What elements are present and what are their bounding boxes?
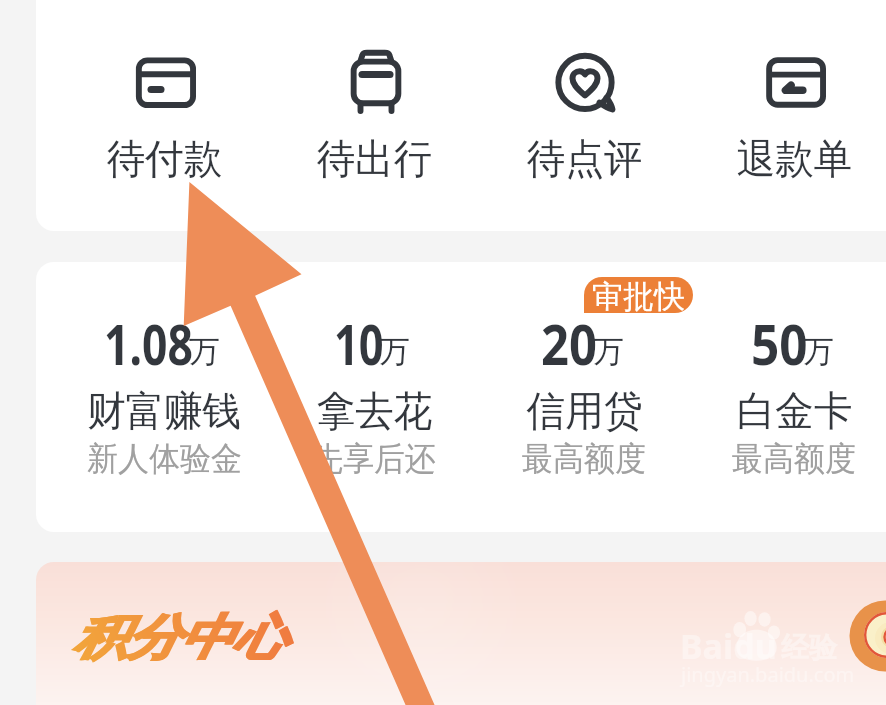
other: 待点评	[549, 47, 621, 117]
staticText: 20	[541, 306, 597, 366]
staticText: 财富赚钱	[87, 386, 241, 438]
staticText: 10	[334, 306, 384, 366]
staticText: jingyan.baidu.com	[681, 661, 855, 688]
staticText: 万	[379, 332, 410, 371]
staticText: 万	[593, 332, 624, 371]
staticText: 拿去花	[317, 386, 432, 438]
button[interactable]: 退款单	[689, 32, 886, 192]
staticText: 最高额度	[732, 438, 856, 480]
button[interactable]: 10	[269, 262, 479, 532]
button[interactable]: 审批快	[584, 277, 693, 313]
staticText: 积分中心	[73, 608, 286, 668]
button[interactable]: 待付款	[59, 32, 269, 192]
staticText: 审批快	[592, 277, 685, 313]
staticText: 积分中心	[72, 608, 285, 668]
staticText: 万	[189, 332, 220, 371]
button[interactable]: 1.08	[59, 262, 269, 532]
other: 待出行	[339, 47, 411, 117]
button[interactable]: 待出行	[269, 32, 479, 192]
staticText: 信用贷	[527, 386, 642, 438]
staticText: 白金卡	[737, 386, 852, 438]
staticText: 1.08	[104, 306, 193, 366]
staticText: 退款单	[737, 134, 852, 186]
staticText: 待付款	[107, 134, 222, 186]
staticText: 先享后还	[312, 438, 436, 480]
staticText: 待出行	[317, 134, 432, 186]
staticText: 新人体验金	[87, 438, 242, 480]
button[interactable]: 50	[689, 262, 886, 532]
other: 退款单	[759, 47, 831, 117]
staticText: 50	[751, 306, 808, 366]
button[interactable]: Baidu	[36, 562, 886, 705]
staticText: 经验	[781, 630, 837, 665]
staticText: 最高额度	[522, 438, 646, 480]
staticText: 万	[803, 332, 834, 371]
other: 待付款	[129, 47, 201, 117]
button[interactable]: 20	[479, 262, 689, 532]
staticText: Baidu	[680, 623, 777, 669]
button[interactable]: 待点评	[479, 32, 689, 192]
staticText: 待点评	[527, 134, 642, 186]
